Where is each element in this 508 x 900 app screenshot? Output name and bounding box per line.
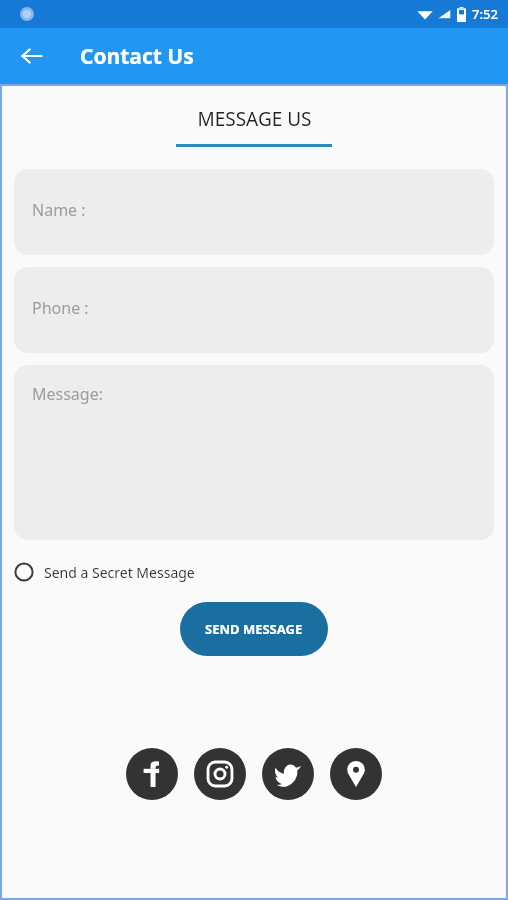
staticText: Name : <box>32 199 86 221</box>
button[interactable]: Back <box>10 34 54 78</box>
button[interactable]: Twitter <box>262 748 314 800</box>
button[interactable]: Instagram <box>194 748 246 800</box>
staticText: Contact Us <box>80 42 194 71</box>
button[interactable]: Phone : <box>14 267 494 353</box>
button[interactable]: Facebook <box>126 748 178 800</box>
button[interactable]: Send a Secret Message <box>14 558 195 586</box>
button[interactable]: MESSAGE US <box>158 106 350 147</box>
staticText: SEND MESSAGE <box>205 620 303 638</box>
staticText: 7:52 <box>472 5 498 23</box>
staticText: Message: <box>32 383 103 405</box>
button[interactable]: SEND MESSAGE <box>180 602 328 656</box>
staticText: Phone : <box>32 297 89 319</box>
button[interactable]: Location <box>330 748 382 800</box>
staticText: Send a Secret Message <box>44 563 195 582</box>
button[interactable]: Name : <box>14 169 494 255</box>
button[interactable]: Message: <box>14 365 494 540</box>
staticText: MESSAGE US <box>197 106 312 132</box>
